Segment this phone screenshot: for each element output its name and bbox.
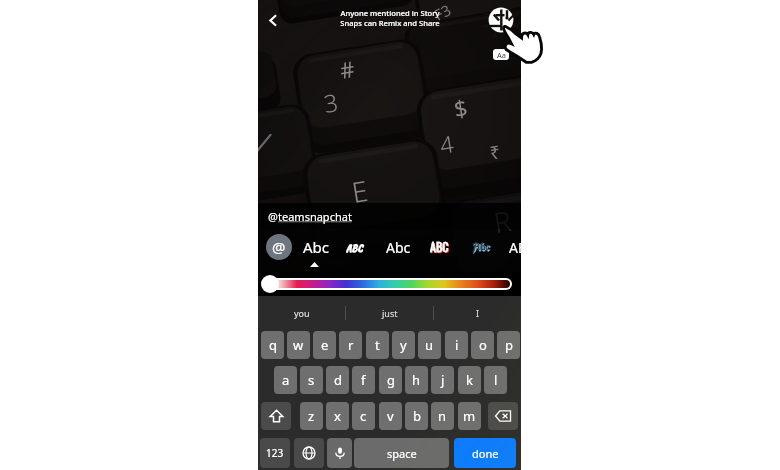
button[interactable]: @: [268, 209, 352, 224]
staticText: h: [412, 371, 421, 389]
button[interactable]: g: [379, 366, 402, 394]
button[interactable]: w: [287, 331, 310, 359]
button[interactable]: [264, 280, 510, 288]
button[interactable]: you: [258, 296, 345, 330]
button[interactable]: space: [354, 438, 449, 468]
staticText: @: [268, 209, 278, 224]
staticText: 3: [321, 85, 340, 120]
button[interactable]: 123: [260, 438, 290, 468]
staticText: n: [438, 407, 447, 425]
staticText: just: [382, 307, 398, 319]
button[interactable]: done: [454, 438, 516, 468]
button[interactable]: Abc: [303, 235, 330, 259]
button[interactable]: Text style: [493, 49, 509, 60]
button[interactable]: i: [445, 331, 468, 359]
staticText: @: [272, 237, 286, 257]
staticText: Abc: [473, 240, 491, 256]
button[interactable]: Shift: [261, 402, 291, 430]
staticText: F3: [430, 0, 455, 25]
staticText: $: [452, 91, 470, 124]
button[interactable]: v: [379, 402, 402, 430]
staticText: e: [321, 336, 329, 354]
button[interactable]: r: [339, 331, 362, 359]
button[interactable]: Back: [260, 7, 286, 33]
button[interactable]: Abc: [386, 235, 411, 259]
staticText: d: [334, 371, 342, 389]
button[interactable]: Backspace: [488, 402, 518, 430]
staticText: R: [491, 201, 514, 241]
button[interactable]: s: [300, 366, 323, 394]
button[interactable]: n: [431, 402, 454, 430]
staticText: space: [387, 446, 417, 461]
button[interactable]: z: [300, 402, 323, 430]
staticText: f: [361, 371, 366, 389]
button[interactable]: o: [471, 331, 494, 359]
button[interactable]: k: [458, 366, 481, 394]
button[interactable]: p: [497, 331, 520, 359]
staticText: t: [375, 336, 380, 354]
staticText: Abc: [472, 239, 490, 255]
button[interactable]: q: [261, 331, 284, 359]
staticText: g: [387, 371, 395, 389]
staticText: o: [479, 336, 487, 354]
staticText: ABC: [431, 239, 450, 257]
staticText: done: [472, 446, 499, 461]
button[interactable]: Voice input: [327, 438, 352, 468]
button[interactable]: Remix: [488, 7, 514, 33]
button[interactable]: c: [352, 402, 375, 430]
button[interactable]: h: [405, 366, 428, 394]
staticText: you: [294, 307, 310, 319]
staticText: u: [425, 336, 434, 354]
staticText: Abc: [386, 238, 411, 257]
staticText: c: [360, 407, 367, 425]
button[interactable]: f: [352, 366, 375, 394]
button[interactable]: I: [434, 296, 521, 330]
button[interactable]: a: [274, 366, 297, 394]
button[interactable]: u: [418, 331, 441, 359]
staticText: Abc: [303, 237, 330, 257]
staticText: y: [400, 336, 407, 354]
staticText: i: [455, 336, 459, 354]
staticText: j: [441, 371, 445, 389]
button[interactable]: Change language: [294, 438, 324, 468]
button[interactable]: AB: [509, 235, 521, 259]
staticText: 123: [266, 446, 284, 460]
staticText: a: [282, 371, 290, 389]
button[interactable]: just: [346, 296, 433, 330]
staticText: ₹: [488, 139, 503, 166]
staticText: v: [387, 407, 394, 425]
button[interactable]: Mention: [266, 234, 292, 260]
staticText: q: [269, 336, 277, 354]
staticText: #: [338, 53, 357, 85]
staticText: s: [308, 371, 315, 389]
button[interactable]: t: [366, 331, 389, 359]
staticText: b: [413, 407, 421, 425]
staticText: w: [293, 336, 304, 354]
button[interactable]: ABC: [346, 235, 363, 259]
staticText: z: [308, 407, 315, 425]
staticText: m: [463, 407, 476, 425]
staticText: AB: [509, 238, 521, 257]
staticText: ABC: [430, 238, 449, 256]
button[interactable]: ABC: [430, 235, 449, 259]
staticText: l: [494, 371, 498, 389]
staticText: ABC: [346, 240, 363, 255]
button[interactable]: m: [458, 402, 481, 430]
staticText: I: [476, 307, 480, 319]
button[interactable]: Abc: [472, 235, 490, 259]
staticText: 4: [438, 127, 456, 160]
staticText: teamsnapchat: [278, 209, 352, 224]
button[interactable]: y: [392, 331, 415, 359]
button[interactable]: x: [326, 402, 349, 430]
staticText: r: [348, 336, 354, 354]
staticText: p: [505, 336, 513, 354]
staticText: k: [466, 371, 473, 389]
button[interactable]: l: [484, 366, 507, 394]
staticText: E: [349, 171, 371, 211]
staticText: x: [334, 407, 341, 425]
button[interactable]: j: [431, 366, 454, 394]
staticText: Anyone mentioned in Story Snaps can Remi…: [340, 8, 440, 28]
button[interactable]: b: [405, 402, 428, 430]
button[interactable]: e: [313, 331, 336, 359]
button[interactable]: d: [326, 366, 349, 394]
